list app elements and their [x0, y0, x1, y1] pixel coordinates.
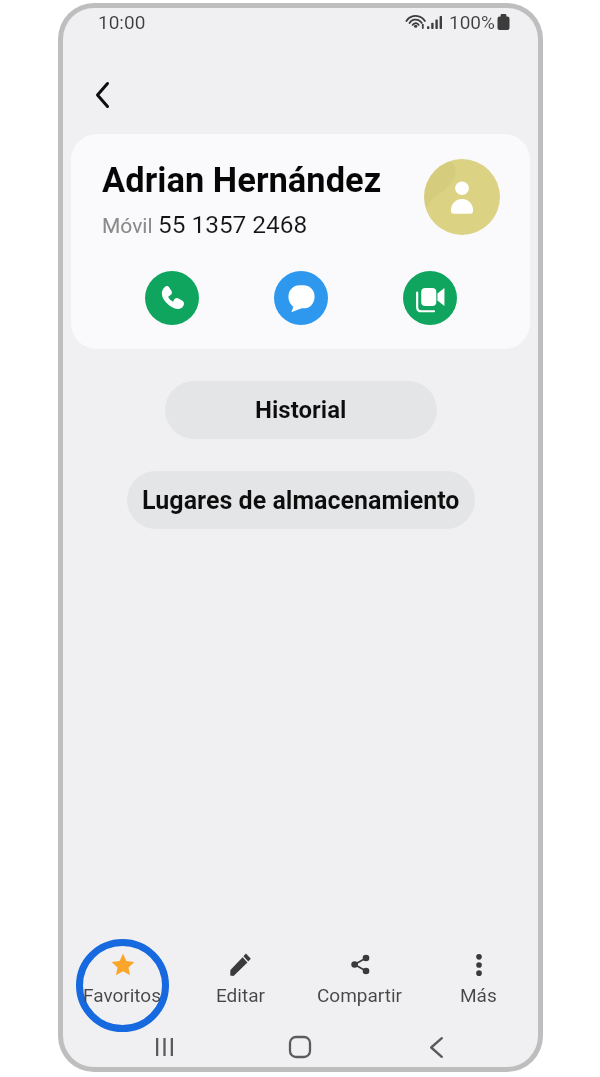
staticText: Adrian Hernández — [102, 160, 382, 200]
button[interactable]: Message — [274, 271, 328, 325]
staticText: Editar — [216, 984, 265, 1006]
staticText: 10:00 — [98, 11, 146, 33]
staticText: Más — [460, 984, 497, 1006]
button[interactable]: Lugares de almacenamiento — [127, 471, 475, 529]
staticText: Móvil — [102, 214, 158, 239]
button[interactable]: Historial — [165, 381, 437, 439]
button[interactable]: Favoritos — [71, 945, 174, 1014]
staticText: Favoritos — [83, 984, 162, 1006]
button[interactable]: Video call — [403, 271, 457, 325]
staticText: 55 1357 2468 — [158, 210, 308, 239]
button[interactable]: Home — [281, 1028, 319, 1066]
button[interactable]: Back — [80, 73, 124, 117]
button[interactable]: Compartir — [305, 945, 415, 1014]
button[interactable]: Contact photo — [424, 159, 500, 235]
staticText: Compartir — [317, 984, 403, 1006]
staticText: Lugares de almacenamiento — [142, 486, 460, 515]
button[interactable]: Back — [417, 1028, 455, 1066]
button[interactable]: Más — [448, 945, 509, 1014]
button[interactable]: Editar — [204, 945, 277, 1014]
staticText: 100% — [449, 11, 495, 33]
button[interactable]: Call — [145, 271, 199, 325]
staticText: Historial — [255, 396, 347, 424]
button[interactable]: Recents — [145, 1028, 183, 1066]
